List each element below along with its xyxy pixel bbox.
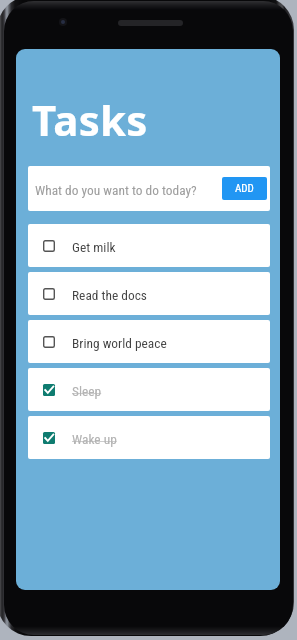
button[interactable]: Get milk — [28, 224, 270, 267]
button[interactable]: ADD — [222, 177, 267, 200]
staticText: Bring world peace — [72, 336, 167, 352]
staticText: Read the docs — [72, 288, 147, 304]
staticText: What do you want to do today? — [35, 183, 197, 199]
button[interactable]: Sleep — [28, 368, 270, 411]
staticText: Get milk — [72, 240, 116, 256]
staticText: Tasks — [32, 91, 148, 148]
staticText: Wake up — [72, 432, 117, 448]
button[interactable]: Bring world peace — [28, 320, 270, 363]
button[interactable]: Wake up — [28, 416, 270, 459]
button[interactable]: Read the docs — [28, 272, 270, 315]
staticText: Sleep — [72, 384, 102, 400]
staticText: ADD — [235, 182, 254, 195]
